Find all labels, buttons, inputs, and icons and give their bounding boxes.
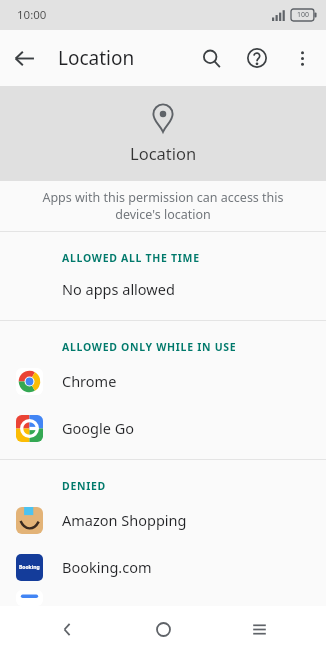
staticText: Booking [19,564,40,571]
staticText: Amazon Shopping [62,510,187,530]
button[interactable]: Home [134,606,192,652]
button[interactable]: Back [0,34,48,82]
staticText: DENIED [62,479,106,493]
button[interactable]: Back [38,606,96,652]
staticText: ALLOWED ALL THE TIME [62,251,200,265]
staticText: Location [130,142,197,164]
button[interactable]: Google Go [0,404,326,451]
staticText: Chrome [62,371,117,391]
button[interactable]: Recent apps [230,606,288,652]
button[interactable]: More options [280,36,324,80]
button[interactable]: Search [188,35,234,81]
staticText: 100 [297,10,310,20]
button[interactable]: Help [234,35,280,81]
staticText: 10:00 [17,7,47,23]
button[interactable]: Chrome [0,357,326,404]
button[interactable]: No apps allowed [0,268,326,310]
button[interactable]: Amazon Shopping [0,496,326,543]
staticText: Google Go [62,418,135,438]
button[interactable]: Booking [0,543,326,590]
staticText: Location [58,45,188,71]
staticText: No apps allowed [62,279,175,299]
staticText: Booking.com [62,557,152,577]
staticText: Apps with this permission can access thi… [16,189,310,223]
staticText: ALLOWED ONLY WHILE IN USE [62,340,237,354]
button[interactable] [0,590,326,606]
